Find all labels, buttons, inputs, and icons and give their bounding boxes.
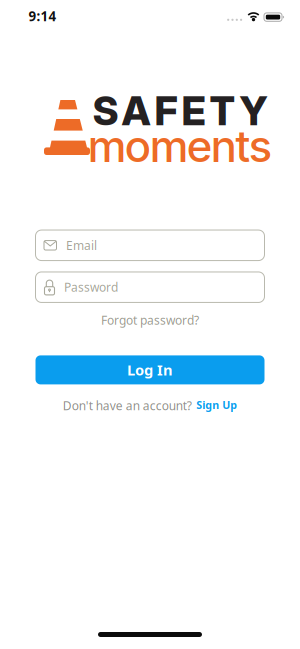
button[interactable]: Forgot password?: [101, 312, 199, 328]
staticText: Password: [64, 279, 118, 295]
staticText: Don't have an account?: [63, 398, 192, 414]
staticText: Sign Up: [196, 398, 237, 412]
staticText: Log In: [127, 360, 173, 380]
staticText: Forgot password?: [101, 312, 199, 328]
button[interactable]: Log In: [35, 355, 264, 384]
button[interactable]: Sign Up: [196, 399, 237, 413]
button[interactable]: Email: [35, 230, 264, 261]
staticText: Email: [66, 237, 97, 253]
button[interactable]: Password: [35, 272, 264, 302]
staticText: moments: [88, 119, 271, 173]
staticText: 9:14: [28, 7, 56, 25]
staticText: SAFETY: [92, 87, 267, 135]
